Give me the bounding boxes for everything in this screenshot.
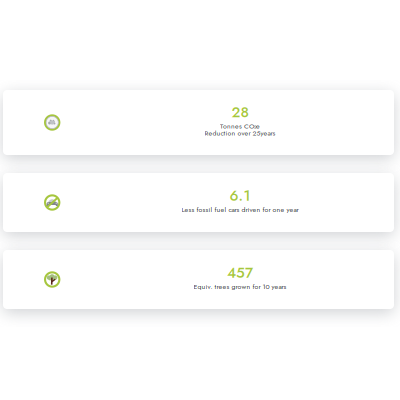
staticText: Tonnes CO₂e [220, 121, 260, 131]
button[interactable]: 6.1 less fossil fuel cars driven for one… [3, 173, 394, 232]
button[interactable]: 28 tonnes CO2e reduction over 25 years [3, 90, 394, 155]
staticText: Less fossil fuel cars driven for one yea… [181, 205, 298, 215]
staticText: 28 [231, 102, 248, 123]
staticText: 457 [227, 262, 253, 283]
staticText: 6.1 [229, 185, 250, 206]
button[interactable]: 457 equivalent trees grown for 10 years [3, 250, 394, 309]
staticText: Reduction over 25years [204, 128, 275, 138]
staticText: Equiv. trees grown for 10 years [193, 282, 286, 292]
